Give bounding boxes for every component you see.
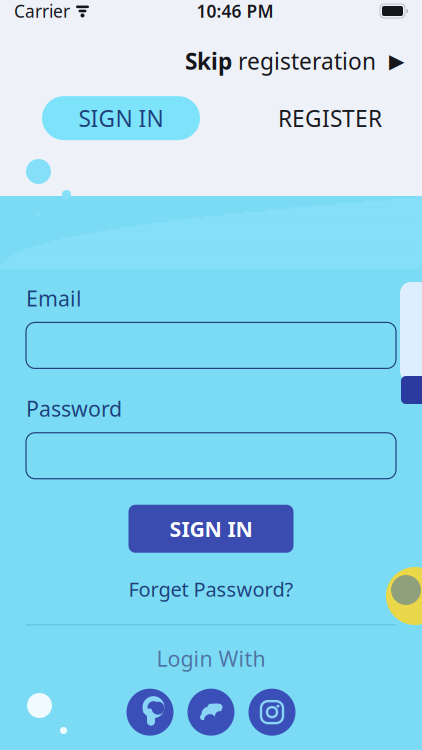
button[interactable]: Sign in with Instagram bbox=[248, 689, 295, 736]
button[interactable]: Sign in with Twitter bbox=[187, 689, 234, 736]
staticText: Forget Password? bbox=[128, 576, 293, 602]
button[interactable]: REGISTER bbox=[258, 96, 402, 140]
button[interactable]: Sign in with Facebook bbox=[126, 689, 173, 736]
staticText: Password bbox=[26, 394, 122, 423]
staticText: Login With bbox=[156, 644, 265, 673]
staticText: REGISTER bbox=[278, 103, 382, 133]
button[interactable]: Skip bbox=[185, 42, 404, 80]
staticText: SIGN IN bbox=[78, 103, 163, 133]
staticText: SIGN IN bbox=[169, 515, 252, 543]
button[interactable] bbox=[26, 322, 396, 368]
staticText: Skip bbox=[185, 46, 232, 76]
staticText: Email bbox=[26, 284, 82, 312]
staticText: 10:46 PM bbox=[196, 0, 273, 22]
staticText: registeration bbox=[232, 46, 376, 76]
staticText: ▶ bbox=[389, 50, 404, 72]
button[interactable]: SIGN IN bbox=[42, 96, 200, 140]
button[interactable]: SIGN IN bbox=[128, 505, 293, 553]
button[interactable] bbox=[26, 433, 396, 479]
button[interactable]: Forget Password? bbox=[128, 572, 293, 606]
staticText: Carrier bbox=[14, 0, 70, 22]
